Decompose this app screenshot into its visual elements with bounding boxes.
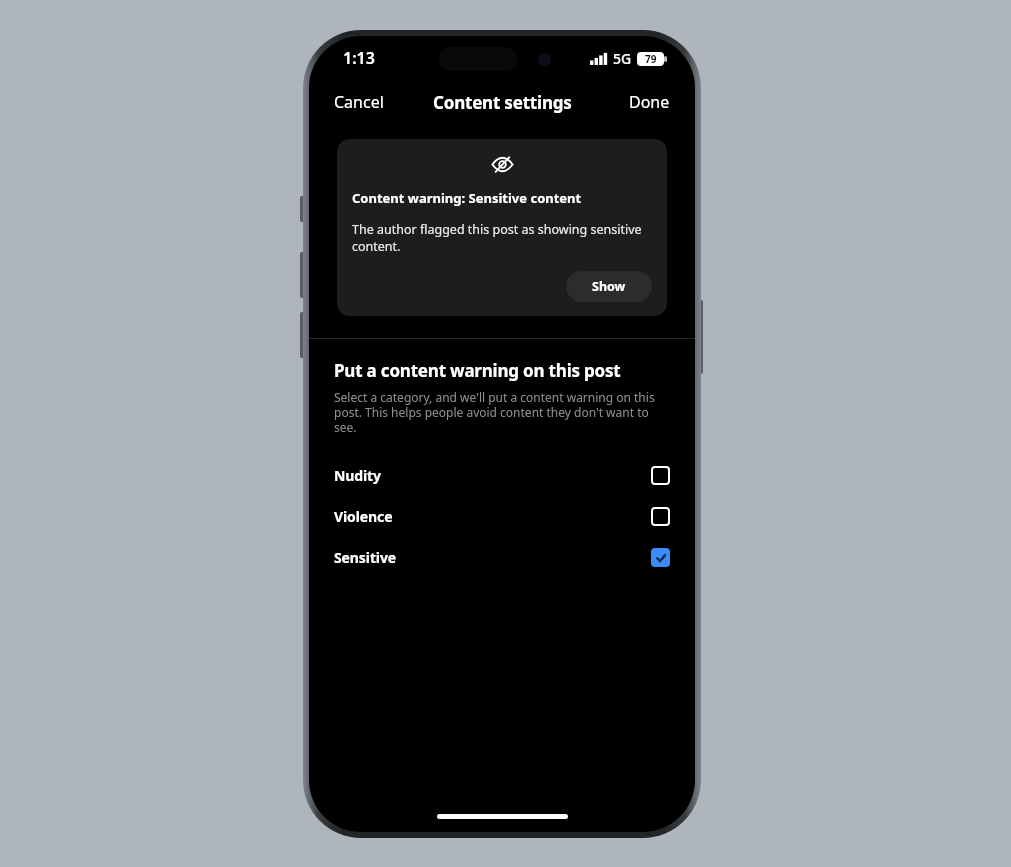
button[interactable]: Show bbox=[566, 271, 652, 302]
button[interactable]: Sensitive bbox=[309, 537, 695, 578]
staticText: Done bbox=[629, 91, 670, 113]
staticText: Sensitive bbox=[334, 548, 397, 567]
staticText: Content settings bbox=[433, 91, 572, 114]
staticText: 1:13 bbox=[343, 47, 375, 69]
staticText: Content warning: Sensitive content bbox=[352, 189, 582, 207]
staticText: Cancel bbox=[334, 91, 384, 113]
staticText: Nudity bbox=[334, 466, 381, 485]
staticText: Show bbox=[592, 278, 626, 295]
staticText: Violence bbox=[334, 507, 393, 526]
staticText: The author flagged this post as showing … bbox=[352, 221, 652, 254]
staticText: Put a content warning on this post bbox=[334, 359, 621, 382]
staticText: 5G bbox=[613, 49, 632, 68]
button[interactable]: Nudity bbox=[309, 455, 695, 496]
other: Hidden content bbox=[491, 153, 514, 176]
staticText: Select a category, and we'll put a conte… bbox=[334, 389, 670, 435]
button[interactable]: Violence bbox=[309, 496, 695, 537]
button[interactable]: Done bbox=[604, 83, 695, 121]
button[interactable]: Cancel bbox=[309, 83, 409, 121]
staticText: 79 bbox=[645, 52, 657, 66]
